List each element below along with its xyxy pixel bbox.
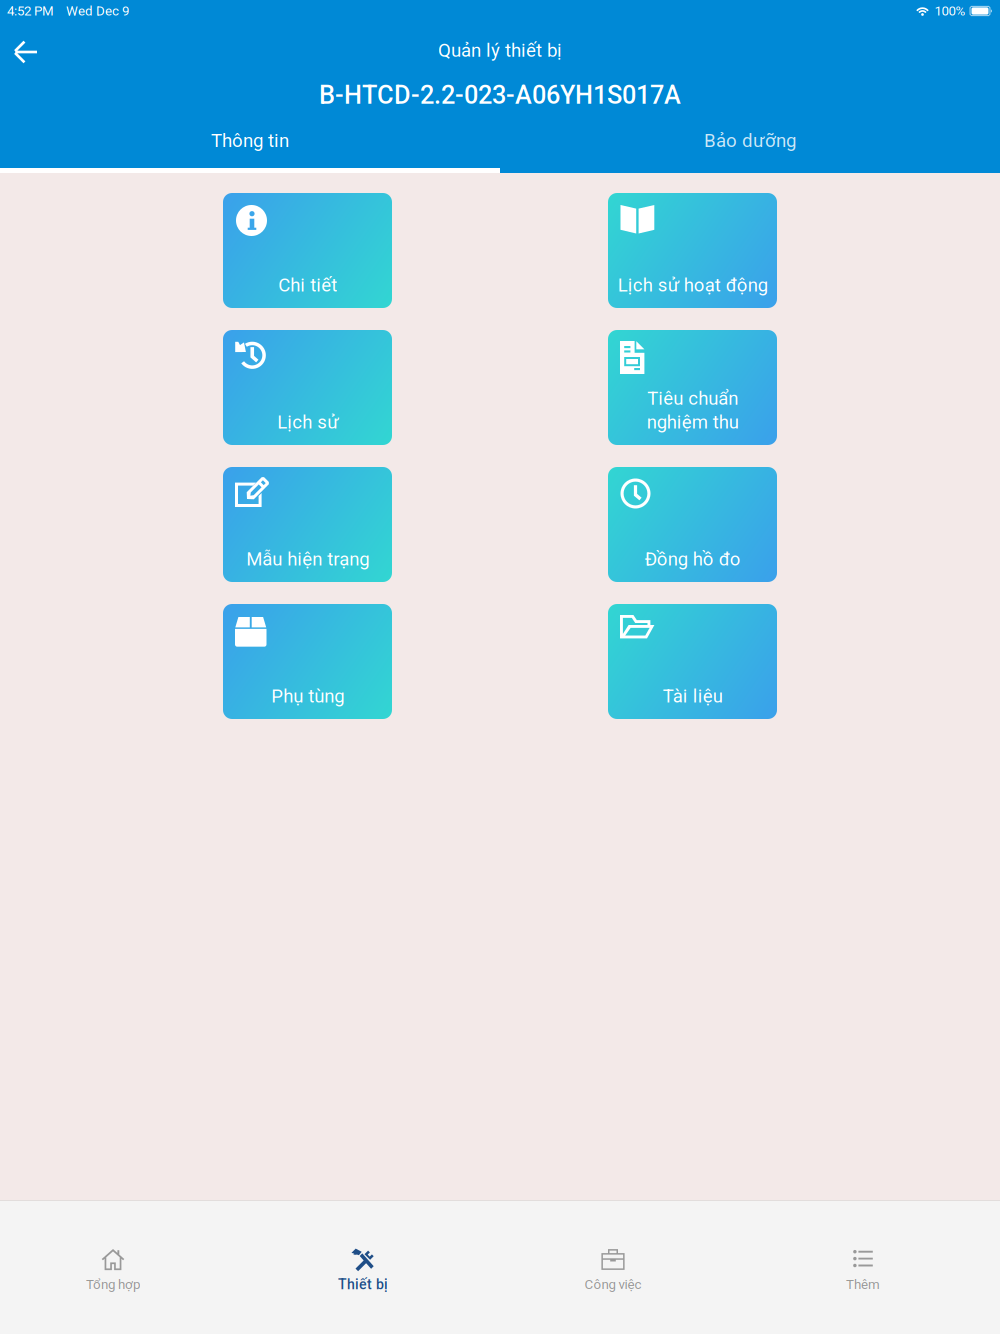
- button[interactable]: Back: [0, 26, 52, 78]
- button[interactable]: Lịch sử hoạt động: [608, 193, 777, 308]
- button[interactable]: Lịch sử: [223, 330, 392, 445]
- staticText: Bảo dưỡng: [704, 130, 796, 151]
- staticText: Tài liệu: [662, 685, 722, 707]
- staticText: Đồng hồ đo: [644, 548, 740, 570]
- staticText: B-HTCD-2.2-023-A06YH1S017A: [319, 80, 681, 110]
- staticText: Wed Dec 9: [66, 3, 129, 19]
- staticText: Tiêu chuẩn nghiệm thu: [646, 388, 738, 433]
- button[interactable]: Chi tiết: [223, 193, 392, 308]
- staticText: Phụ tùng: [271, 685, 344, 707]
- button[interactable]: Tổng hợp: [0, 1201, 238, 1314]
- button[interactable]: Phụ tùng: [223, 604, 392, 719]
- button[interactable]: Mẫu hiện trạng: [223, 467, 392, 582]
- staticText: Mẫu hiện trạng: [246, 548, 369, 570]
- staticText: 100%: [934, 3, 965, 19]
- staticText: Lịch sử hoạt động: [617, 274, 767, 296]
- button[interactable]: Thiết bị: [238, 1201, 488, 1314]
- button[interactable]: Thêm: [738, 1201, 988, 1314]
- staticText: Công việc: [584, 1277, 641, 1292]
- staticText: Lịch sử: [277, 411, 338, 433]
- staticText: 4:52 PM: [7, 3, 54, 19]
- button[interactable]: Thông tin: [0, 113, 500, 173]
- staticText: Tổng hợp: [86, 1277, 140, 1292]
- button[interactable]: Công việc: [488, 1201, 738, 1314]
- button[interactable]: Tài liệu: [608, 604, 777, 719]
- button[interactable]: Đồng hồ đo: [608, 467, 777, 582]
- staticText: Thêm: [846, 1277, 880, 1292]
- button[interactable]: Tiêu chuẩn nghiệm thu: [608, 330, 777, 445]
- button[interactable]: Bảo dưỡng: [500, 113, 1000, 173]
- staticText: Chi tiết: [278, 274, 337, 296]
- staticText: Quản lý thiết bị: [438, 39, 562, 61]
- staticText: Thông tin: [211, 130, 289, 151]
- staticText: Thiết bị: [338, 1276, 388, 1293]
